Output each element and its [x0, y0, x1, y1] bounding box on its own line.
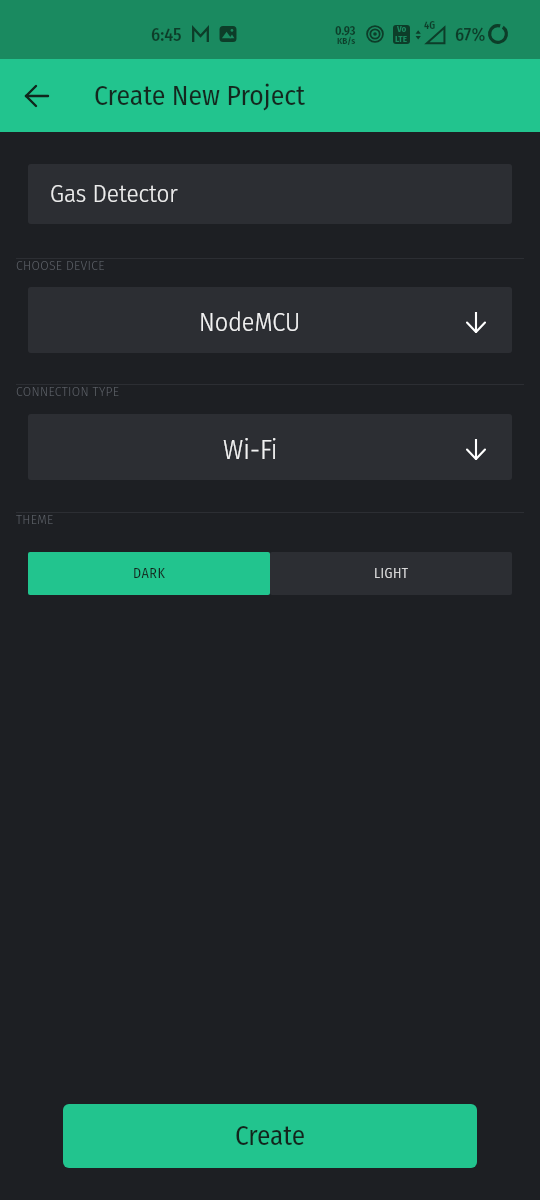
- staticText: Create New Project: [94, 79, 305, 112]
- button[interactable]: Create: [63, 1104, 477, 1168]
- button[interactable]: Gas Detector: [28, 164, 512, 224]
- staticText: 4G: [424, 20, 436, 32]
- button[interactable]: LIGHT: [270, 552, 512, 595]
- staticText: Create: [235, 1120, 306, 1152]
- staticText: Vo: [397, 25, 407, 35]
- other: Expand: [466, 439, 486, 459]
- button[interactable]: DARK: [28, 552, 270, 595]
- button[interactable]: Wi-Fi: [28, 414, 512, 480]
- other: Battery 67 percent: [488, 24, 508, 44]
- staticText: 6:45: [151, 24, 182, 46]
- staticText: CHOOSE DEVICE: [16, 257, 105, 273]
- staticText: THEME: [16, 511, 54, 527]
- staticText: NodeMCU: [199, 307, 301, 338]
- staticText: 67%: [455, 24, 486, 46]
- other: Expand: [466, 312, 486, 332]
- staticText: DARK: [133, 565, 166, 582]
- staticText: CONNECTION TYPE: [16, 383, 120, 399]
- staticText: 0.93: [335, 24, 356, 38]
- staticText: Gas Detector: [50, 179, 178, 209]
- staticText: LTE: [395, 34, 408, 44]
- staticText: Wi-Fi: [223, 433, 278, 466]
- button[interactable]: NodeMCU: [28, 287, 512, 353]
- staticText: KB/s: [337, 36, 356, 47]
- staticText: LIGHT: [374, 565, 409, 582]
- button[interactable]: Back: [13, 72, 61, 120]
